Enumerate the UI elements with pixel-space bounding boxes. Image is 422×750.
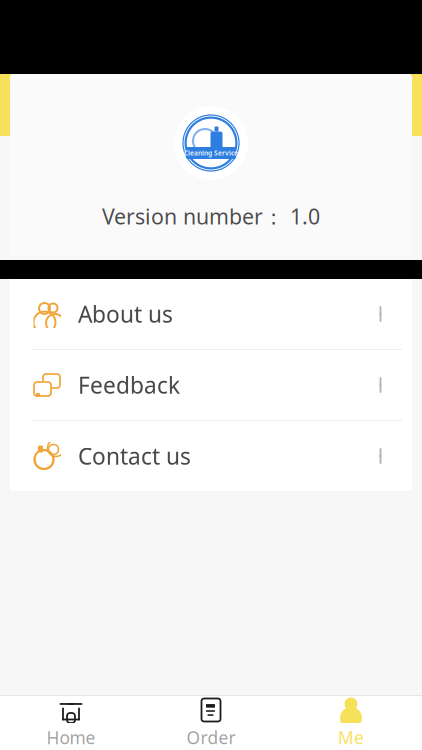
button[interactable]: About us [10,279,412,349]
staticText: Order [186,726,235,749]
staticText: Home [46,726,95,749]
staticText: Version number： 1.0 [102,202,320,230]
staticText: Cleaning Service [184,149,238,157]
button[interactable]: Feedback [10,350,412,420]
button[interactable]: Me [281,696,421,750]
button[interactable]: Order [141,696,281,750]
button[interactable]: Home [1,696,141,750]
staticText: About us [78,299,173,329]
staticText: Me [338,726,364,749]
staticText: Contact us [78,441,191,471]
staticText: Feedback [78,370,180,400]
button[interactable]: Contact us [10,421,412,491]
